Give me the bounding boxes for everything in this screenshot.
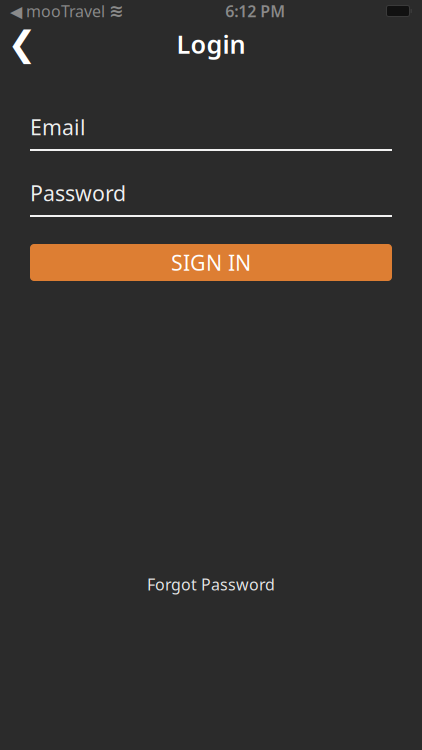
- staticText: SIGN IN: [171, 248, 251, 277]
- staticText: ❮: [7, 24, 36, 64]
- staticText: Login: [176, 27, 245, 61]
- button[interactable]: Forgot Password: [131, 566, 291, 603]
- button[interactable]: SIGN IN: [30, 244, 392, 281]
- staticText: ◀ mooTravel: [10, 0, 105, 22]
- staticText: 6:12 PM: [225, 0, 285, 22]
- staticText: Email: [30, 113, 86, 141]
- button[interactable]: Back: [0, 22, 44, 66]
- staticText: ≋: [109, 1, 124, 21]
- staticText: Forgot Password: [147, 574, 275, 595]
- staticText: Password: [30, 179, 126, 207]
